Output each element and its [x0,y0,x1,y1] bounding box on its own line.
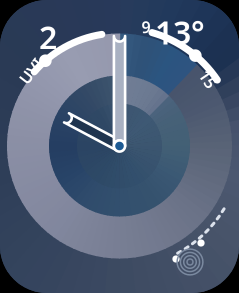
staticText: UVI [17,60,45,82]
staticText: 9 [141,16,150,38]
staticText: 13° [155,11,205,53]
button[interactable]: UV index [0,0,239,293]
staticText: 2 [39,16,57,58]
button[interactable]: Temperature [0,0,239,293]
button[interactable]: Activity [0,0,239,293]
staticText: 15 [199,68,217,90]
